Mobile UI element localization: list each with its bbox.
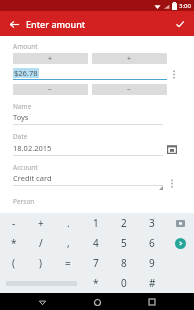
button[interactable]: 18.02.2015 bbox=[13, 143, 163, 156]
button[interactable]: # bbox=[138, 273, 166, 293]
button[interactable]: + bbox=[27, 213, 54, 233]
staticText: * bbox=[11, 236, 17, 250]
staticText: 0 bbox=[121, 276, 127, 290]
button[interactable]: Toys bbox=[13, 112, 163, 125]
staticText: Name bbox=[13, 102, 32, 111]
button[interactable]: Hide keyboard bbox=[34, 294, 50, 310]
button[interactable]: Pick date bbox=[163, 142, 181, 156]
staticText: Amount bbox=[13, 42, 38, 51]
staticText: Toys bbox=[13, 112, 29, 122]
button[interactable]: + bbox=[13, 53, 88, 64]
button[interactable]: Recents bbox=[144, 294, 160, 310]
staticText: + bbox=[48, 54, 53, 64]
button[interactable]: ( bbox=[0, 253, 27, 273]
button[interactable]: Back bbox=[5, 15, 23, 33]
staticText: 4 bbox=[93, 236, 99, 250]
button[interactable]: / bbox=[27, 233, 54, 253]
button[interactable]: 1 bbox=[82, 213, 110, 233]
staticText: , bbox=[67, 236, 70, 250]
staticText: 1 bbox=[93, 216, 99, 230]
staticText: Account bbox=[13, 163, 38, 172]
button[interactable]: Next bbox=[166, 233, 194, 253]
staticText: + bbox=[127, 54, 132, 64]
button[interactable]: 0 bbox=[110, 273, 138, 293]
button[interactable]: Backspace bbox=[166, 213, 194, 233]
staticText: Credit card bbox=[13, 173, 52, 183]
button[interactable]: − bbox=[92, 84, 167, 95]
staticText: 7 bbox=[93, 256, 99, 270]
staticText: ) bbox=[39, 256, 42, 270]
staticText: Enter amount bbox=[26, 18, 86, 30]
button[interactable]: 7 bbox=[82, 253, 110, 273]
button[interactable]: 3 bbox=[138, 213, 166, 233]
button[interactable]: 8 bbox=[110, 253, 138, 273]
button[interactable]: ) bbox=[27, 253, 54, 273]
staticText: = bbox=[65, 256, 71, 270]
staticText: 3 bbox=[149, 216, 155, 230]
button[interactable]: Confirm bbox=[171, 15, 189, 33]
button[interactable]: + bbox=[92, 53, 167, 64]
button[interactable]: * bbox=[82, 273, 110, 293]
button[interactable]: Space bbox=[0, 273, 82, 293]
button[interactable]: More options bbox=[163, 176, 181, 190]
button[interactable]: = bbox=[54, 253, 82, 273]
staticText: − bbox=[48, 85, 53, 95]
button[interactable]: Home bbox=[89, 294, 105, 310]
button[interactable]: , bbox=[54, 233, 82, 253]
staticText: # bbox=[149, 276, 156, 290]
button[interactable]: 6 bbox=[138, 233, 166, 253]
staticText: 6 bbox=[149, 236, 155, 250]
staticText: Date bbox=[13, 132, 28, 141]
button[interactable]: 9 bbox=[138, 253, 166, 273]
staticText: 2 bbox=[121, 216, 127, 230]
button[interactable]: − bbox=[13, 84, 88, 95]
button[interactable]: 5 bbox=[110, 233, 138, 253]
staticText: $26.78 bbox=[14, 68, 38, 78]
staticText: Person bbox=[13, 197, 35, 206]
button[interactable]: . bbox=[54, 213, 82, 233]
staticText: − bbox=[127, 85, 132, 95]
staticText: * bbox=[93, 276, 99, 290]
button[interactable]: More options bbox=[167, 67, 181, 81]
staticText: 18.02.2015 bbox=[13, 143, 52, 153]
staticText: 3:00 bbox=[179, 2, 191, 10]
button[interactable]: * bbox=[0, 233, 27, 253]
staticText: 5 bbox=[121, 236, 127, 250]
staticText: + bbox=[38, 216, 44, 230]
button[interactable]: - bbox=[0, 213, 27, 233]
staticText: / bbox=[39, 236, 43, 250]
button[interactable]: 4 bbox=[82, 233, 110, 253]
staticText: 9 bbox=[149, 256, 155, 270]
staticText: - bbox=[12, 216, 16, 230]
staticText: ( bbox=[12, 256, 15, 270]
staticText: . bbox=[67, 216, 70, 230]
button[interactable]: Credit card bbox=[13, 173, 163, 190]
staticText: 8 bbox=[121, 256, 127, 270]
button[interactable]: 2 bbox=[110, 213, 138, 233]
